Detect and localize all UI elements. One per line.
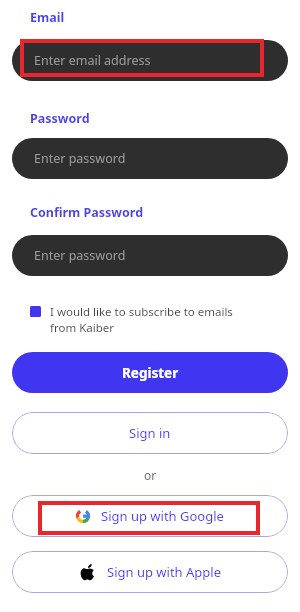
staticText: Enter password [34,247,126,264]
staticText: Sign in [129,424,171,442]
button[interactable]: Enter password [12,138,288,179]
staticText: Register [122,364,179,382]
staticText: or [12,467,288,483]
button[interactable]: Sign up with Google [12,495,288,537]
staticText: Enter email address [34,52,151,69]
button[interactable]: Sign up with Apple [12,551,288,593]
button[interactable]: Enter email address [12,40,288,81]
staticText: Sign up with Google [101,507,224,525]
staticText: Email [30,9,65,26]
button[interactable]: Enter password [12,235,288,276]
staticText: I would like to subscribe to emails from… [50,304,262,335]
staticText: Confirm Password [30,204,144,221]
button[interactable]: Sign in [12,412,288,454]
button[interactable]: Subscribe to emails checkbox [30,306,41,317]
staticText: Password [30,110,90,127]
staticText: Sign up with Apple [107,563,221,581]
button[interactable]: Register [12,352,288,393]
staticText: Enter password [34,150,126,167]
